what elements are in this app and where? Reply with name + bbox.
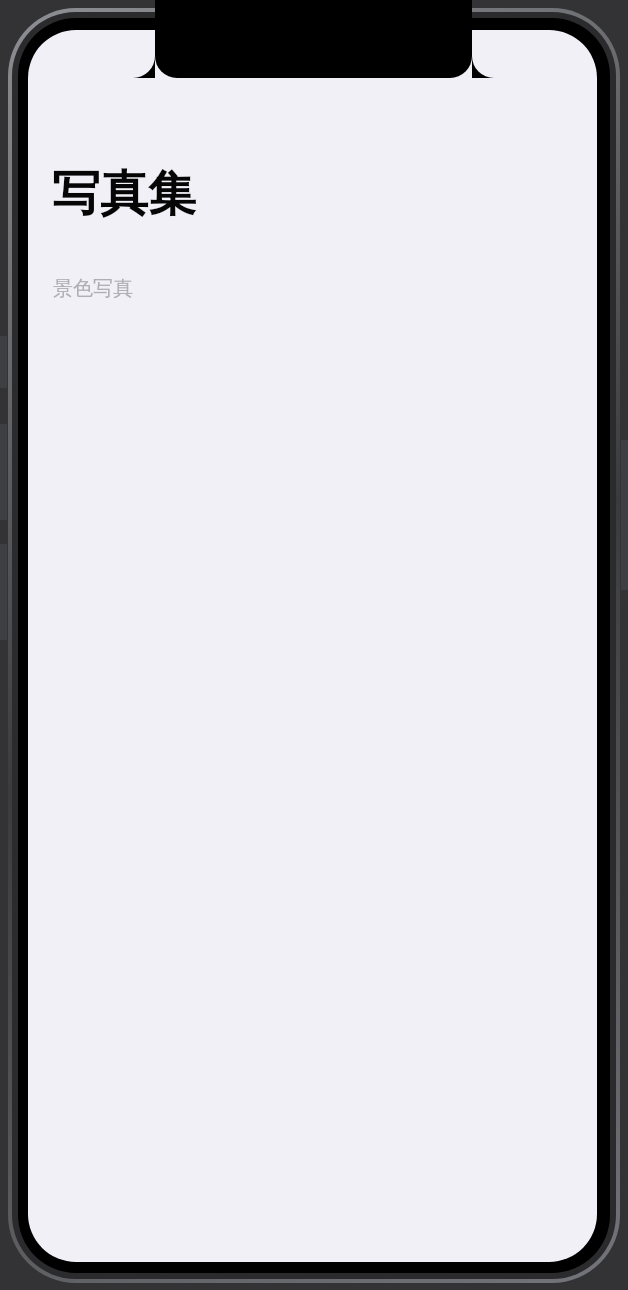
staticText: 写真集	[52, 164, 196, 224]
staticText: 景色写真	[53, 276, 133, 301]
button[interactable]: 写真集	[52, 164, 196, 224]
button[interactable]: 景色写真	[53, 276, 133, 301]
